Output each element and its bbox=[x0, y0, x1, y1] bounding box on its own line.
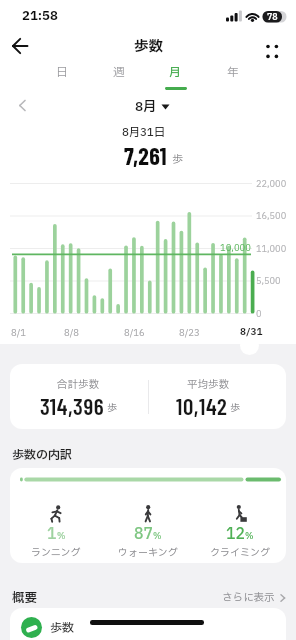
staticText: 11,000 bbox=[256, 243, 287, 256]
staticText: 5,500 bbox=[256, 275, 281, 288]
button[interactable]: 年 bbox=[0, 0, 48, 26]
button[interactable] bbox=[6, 32, 34, 60]
button[interactable] bbox=[12, 95, 36, 117]
staticText: 16,500 bbox=[256, 210, 287, 223]
button[interactable] bbox=[260, 40, 284, 64]
button[interactable]: 日 bbox=[0, 0, 48, 26]
button[interactable]: さらに表示 bbox=[180, 588, 288, 608]
staticText: 歩 bbox=[230, 400, 240, 415]
staticText: 歩数の内訳 bbox=[12, 446, 73, 464]
staticText: さらに表示 bbox=[222, 590, 275, 606]
staticText: 歩 bbox=[107, 400, 117, 415]
staticText: 歩数 bbox=[134, 36, 163, 58]
staticText: 8月31日 bbox=[122, 124, 165, 141]
staticText: 7,261 bbox=[124, 141, 167, 170]
staticText: 8/1 bbox=[11, 326, 26, 339]
button[interactable] bbox=[231, 505, 249, 523]
staticText: 21:58 bbox=[22, 7, 58, 26]
staticText: 週 bbox=[113, 64, 125, 81]
button[interactable]: 8月 bbox=[0, 0, 120, 24]
button[interactable]: 月 bbox=[0, 0, 48, 26]
staticText: 8月 bbox=[135, 97, 157, 116]
staticText: % bbox=[153, 530, 162, 543]
staticText: 314,396 bbox=[40, 392, 105, 418]
button[interactable] bbox=[47, 505, 65, 523]
staticText: 日 bbox=[56, 64, 68, 81]
staticText: 12 bbox=[226, 523, 245, 545]
staticText: 8/31 bbox=[240, 325, 263, 339]
staticText: 8/23 bbox=[179, 326, 200, 339]
staticText: 8/8 bbox=[64, 326, 79, 339]
staticText: 歩 bbox=[172, 151, 183, 168]
button[interactable] bbox=[240, 336, 259, 355]
staticText: 0 bbox=[256, 308, 262, 321]
staticText: 1 bbox=[47, 523, 57, 545]
staticText: 22,000 bbox=[256, 178, 287, 191]
staticText: 月 bbox=[169, 64, 181, 81]
staticText: 78 bbox=[267, 11, 278, 24]
staticText: クライミング bbox=[210, 545, 270, 560]
staticText: 年 bbox=[227, 64, 239, 81]
staticText: 概要 bbox=[12, 589, 38, 607]
staticText: 10,142 bbox=[176, 392, 228, 418]
button[interactable] bbox=[139, 505, 157, 523]
staticText: ランニング bbox=[31, 545, 81, 560]
staticText: % bbox=[57, 530, 66, 543]
staticText: 8/16 bbox=[124, 326, 145, 339]
button[interactable]: 合計歩数 bbox=[10, 364, 286, 429]
staticText: 87 bbox=[134, 523, 153, 545]
staticText: 10,000 bbox=[220, 241, 251, 254]
button[interactable]: 歩数 bbox=[10, 608, 286, 640]
staticText: 平均歩数 bbox=[187, 377, 229, 393]
staticText: 歩数 bbox=[50, 619, 75, 637]
button[interactable]: 週 bbox=[0, 0, 48, 26]
staticText: 合計歩数 bbox=[57, 377, 99, 393]
staticText: ウォーキング bbox=[118, 545, 178, 560]
staticText: % bbox=[245, 530, 254, 543]
